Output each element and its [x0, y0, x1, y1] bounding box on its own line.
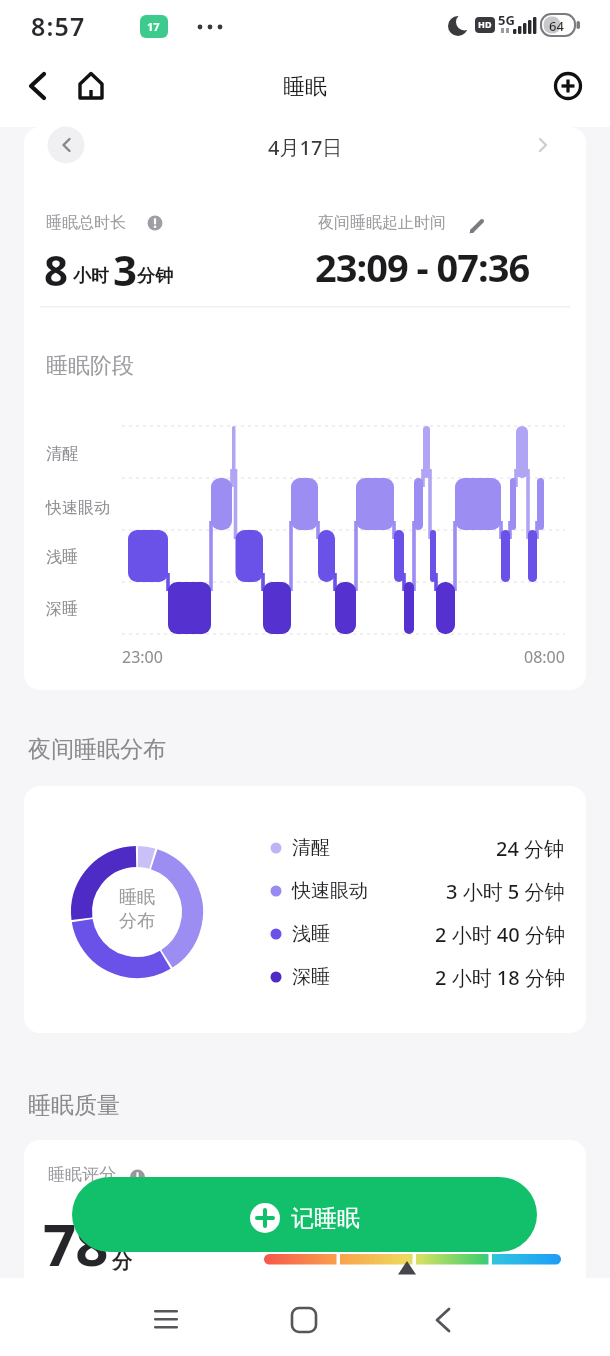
staticText: 分钟 — [137, 265, 173, 288]
staticText: 2 小时 18 分钟 — [435, 964, 565, 991]
staticText: 快速眼动 — [46, 498, 110, 518]
button[interactable]: 浅睡 — [260, 913, 565, 955]
staticText: 23:00 — [122, 646, 163, 668]
staticText: 睡眠 分布 — [119, 886, 155, 932]
button[interactable] — [408, 1290, 478, 1350]
staticText: 浅睡 — [292, 922, 330, 946]
staticText: 夜间睡眠起止时间 — [318, 213, 446, 233]
staticText: 4月17日 — [268, 134, 343, 161]
button[interactable] — [523, 125, 563, 165]
staticText: 8 — [44, 241, 69, 298]
button[interactable] — [68, 62, 114, 110]
staticText: 深睡 — [46, 599, 78, 619]
staticText: 记睡眠 — [291, 1204, 360, 1233]
button[interactable]: 清醒 — [260, 827, 565, 869]
staticText: 17 — [147, 19, 160, 34]
staticText: 24 分钟 — [496, 835, 565, 862]
staticText: 64 — [549, 17, 564, 35]
button[interactable] — [269, 1290, 339, 1350]
staticText: 深睡 — [292, 965, 330, 989]
staticText: 睡眠评分 — [48, 1164, 116, 1185]
staticText: 浅睡 — [46, 547, 78, 567]
staticText: 睡眠 — [283, 73, 327, 101]
staticText: 睡眠总时长 — [46, 213, 126, 233]
staticText: 夜间睡眠分布 — [28, 735, 166, 764]
staticText: 2 小时 40 分钟 — [435, 921, 565, 948]
staticText: 3 — [113, 241, 138, 298]
button[interactable] — [18, 62, 64, 110]
staticText: 08:00 — [524, 646, 565, 668]
staticText: 78 — [43, 1204, 108, 1283]
staticText: 23:09 - 07:36 — [315, 241, 530, 293]
button[interactable] — [131, 1290, 201, 1350]
button[interactable]: 记睡眠 — [72, 1177, 537, 1252]
button[interactable] — [46, 125, 86, 165]
button[interactable] — [544, 62, 594, 110]
staticText: 清醒 — [292, 836, 330, 860]
button[interactable]: 快速眼动 — [260, 870, 565, 912]
staticText: 3 小时 5 分钟 — [446, 878, 565, 905]
staticText: HD — [478, 18, 492, 30]
staticText: 快速眼动 — [292, 879, 368, 903]
staticText: 小时 — [73, 265, 109, 288]
staticText: 5G — [498, 11, 515, 29]
staticText: 睡眠阶段 — [46, 352, 134, 380]
staticText: 睡眠质量 — [28, 1091, 120, 1120]
staticText: 清醒 — [46, 444, 78, 464]
staticText: 分 — [112, 1249, 132, 1274]
button[interactable]: 深睡 — [260, 956, 565, 998]
staticText: 8:57 — [31, 9, 86, 43]
